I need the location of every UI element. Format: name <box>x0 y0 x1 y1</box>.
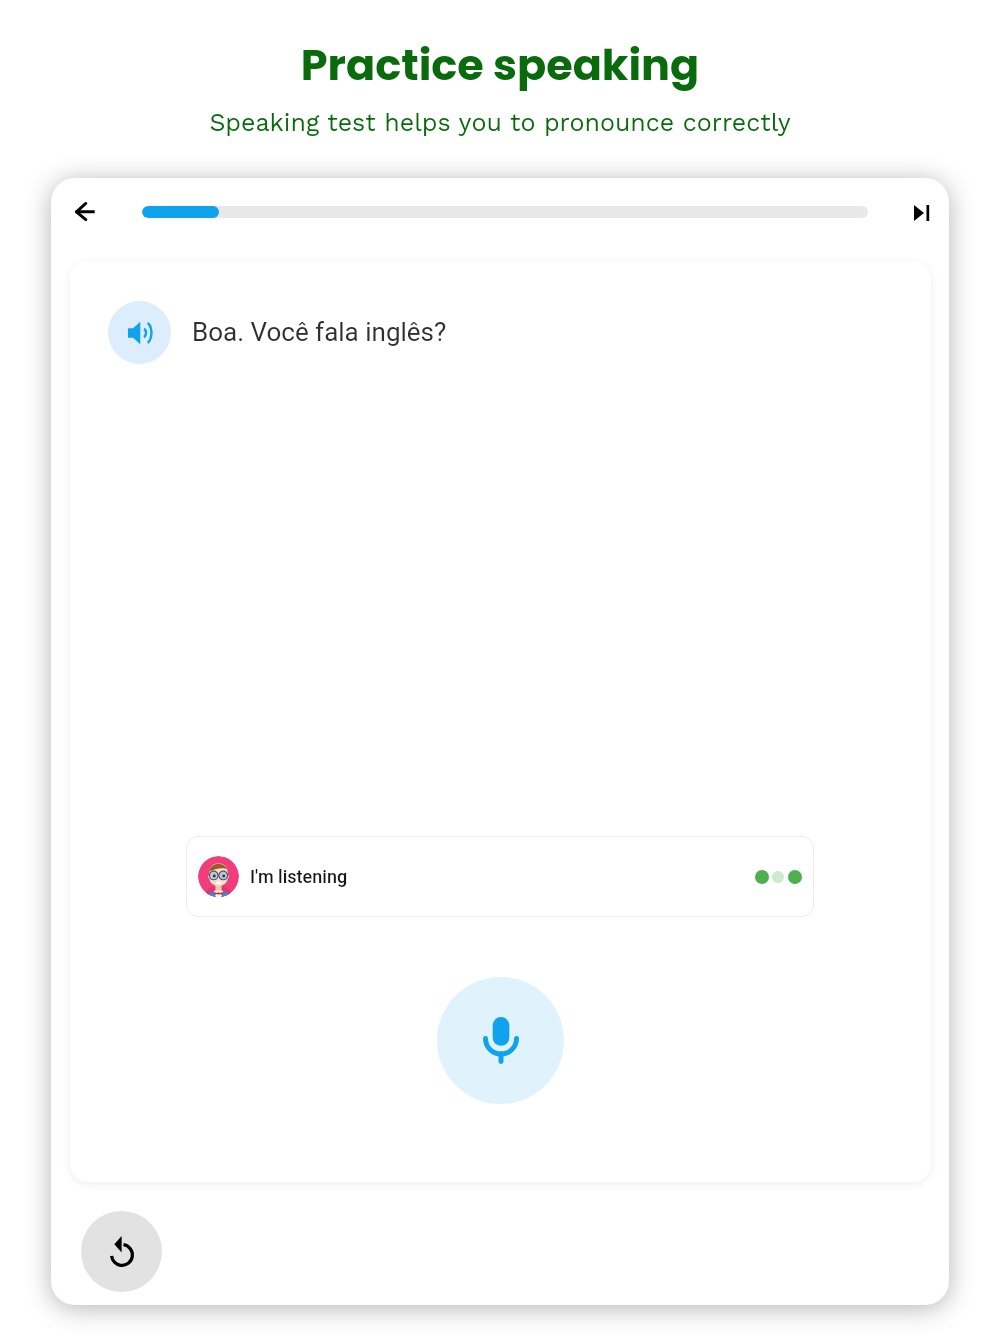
button[interactable]: Record <box>437 977 564 1104</box>
button[interactable]: I'm listening <box>186 836 814 917</box>
staticText: I'm listening <box>250 866 348 887</box>
staticText: Practice speaking <box>0 35 1000 95</box>
button[interactable]: Back <box>59 186 110 237</box>
button[interactable]: Play audio <box>108 301 171 364</box>
button[interactable]: Replay <box>81 1211 162 1292</box>
staticText: Boa. Você fala inglês? <box>192 317 447 347</box>
button[interactable]: Skip <box>897 188 947 238</box>
staticText: Speaking test helps you to pronounce cor… <box>0 108 1000 137</box>
